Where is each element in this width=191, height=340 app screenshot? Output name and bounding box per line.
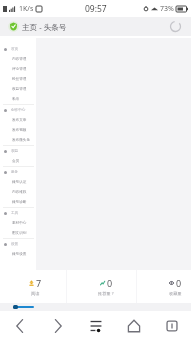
staticText: 服务 (11, 170, 19, 175)
staticText: 推荐量 ? (98, 291, 114, 297)
button[interactable]: 内容维权 (0, 187, 36, 197)
staticText: 会员 (12, 159, 20, 164)
staticText: 收藏量 (169, 291, 182, 296)
staticText: 7 (36, 277, 42, 289)
staticText: 账号认证 (12, 180, 27, 185)
button[interactable]: 评论管理 (0, 64, 36, 74)
button[interactable]: 0 (82, 270, 130, 303)
staticText: 素材中心 (12, 221, 27, 226)
staticText: 阅读 (31, 291, 40, 296)
staticText: 发布文章 (12, 118, 27, 123)
button[interactable]: Refresh (169, 20, 182, 33)
staticText: 发布微头条 (12, 138, 30, 143)
staticText: 首页 (11, 47, 19, 52)
button[interactable]: 私信 (0, 94, 36, 104)
staticText: 1K/s (19, 4, 34, 14)
staticText: 设置 (11, 242, 19, 247)
staticText: 0 (107, 277, 113, 289)
staticText: 内容管理 (12, 57, 27, 62)
staticText: 收益管理 (12, 87, 27, 92)
staticText: 工具 (11, 211, 19, 216)
button[interactable]: 首页 (0, 44, 36, 54)
staticText: 评论管理 (12, 67, 27, 72)
button[interactable]: 发布文章 (0, 115, 36, 125)
staticText: 粉丝管理 (12, 77, 27, 82)
staticText: 账号诊断 (12, 200, 27, 205)
staticText: 0 (176, 277, 182, 289)
button[interactable]: 账号设置 (0, 249, 36, 259)
button[interactable]: 服务 (0, 167, 36, 177)
button[interactable]: 素材中心 (0, 218, 36, 228)
button[interactable]: Back (0, 311, 39, 340)
button[interactable]: 发布微头条 (0, 135, 36, 145)
button[interactable]: 7 (11, 270, 59, 303)
staticText: 权益 (11, 149, 19, 154)
button[interactable]: Menu (77, 311, 115, 340)
staticText: 73% (160, 4, 174, 14)
button[interactable]: 账号诊断 (0, 197, 36, 207)
button[interactable]: 0 (151, 270, 191, 303)
button[interactable]: Home (115, 311, 153, 340)
button[interactable]: 创作中心 (0, 105, 36, 115)
button[interactable]: 设置 (0, 239, 36, 249)
staticText: 主页 - 头条号 (22, 22, 67, 32)
staticText: 09:57 (85, 3, 107, 15)
button[interactable]: 工具 (0, 208, 36, 218)
staticText: 内容维权 (12, 190, 27, 195)
staticText: 账号设置 (12, 252, 27, 257)
button[interactable]: 权益 (0, 146, 36, 156)
button[interactable]: 账号认证 (0, 177, 36, 187)
staticText: 发布视频 (12, 128, 27, 133)
button[interactable]: 发布视频 (0, 125, 36, 135)
staticText: 图文识别 (12, 231, 27, 236)
button[interactable]: 图文识别 (0, 228, 36, 238)
button[interactable]: 会员 (0, 156, 36, 166)
button[interactable]: 收益管理 (0, 84, 36, 94)
staticText: 私信 (12, 97, 20, 102)
button[interactable]: 粉丝管理 (0, 74, 36, 84)
staticText: 创作中心 (11, 108, 26, 113)
button[interactable]: Forward (39, 311, 77, 340)
button[interactable]: 内容管理 (0, 54, 36, 64)
button[interactable]: 主页 - 头条号 (0, 17, 191, 36)
button[interactable]: Tabs (153, 311, 191, 340)
